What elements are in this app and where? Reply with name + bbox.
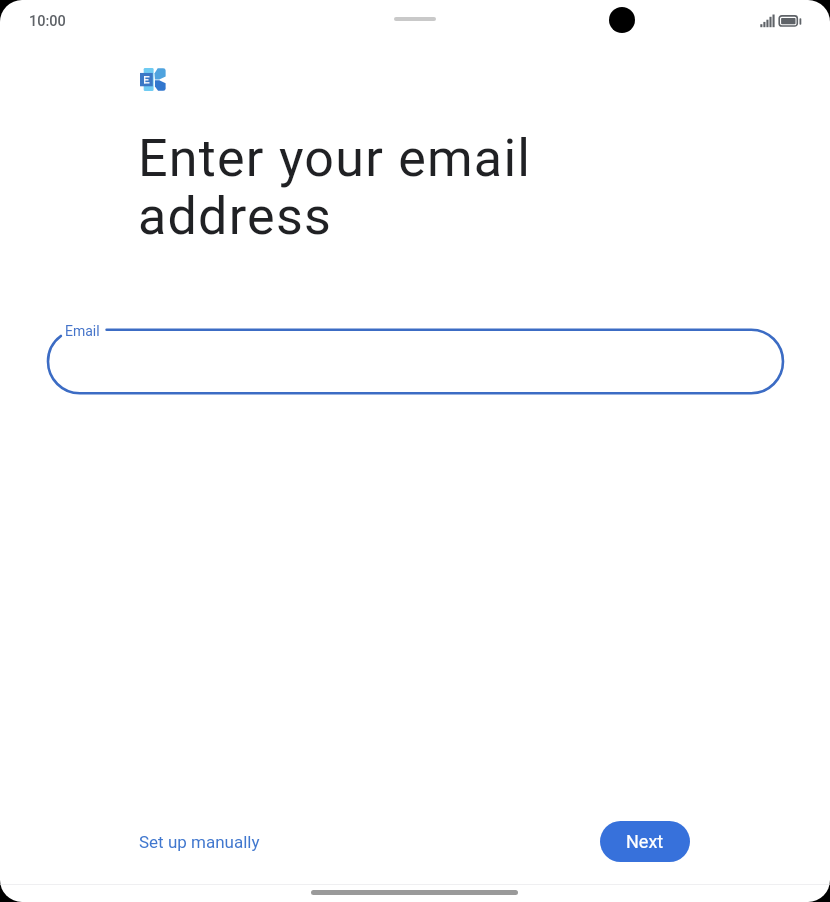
staticText: Enter your email address (138, 128, 532, 247)
staticText: Email (65, 323, 100, 339)
staticText: Next (626, 831, 664, 852)
button[interactable]: Set up manually (121, 819, 278, 865)
button[interactable]: Email address input field (48, 327, 783, 396)
button[interactable]: Next (600, 821, 690, 862)
staticText: 10:00 (29, 13, 66, 30)
staticText: Set up manually (139, 832, 260, 852)
